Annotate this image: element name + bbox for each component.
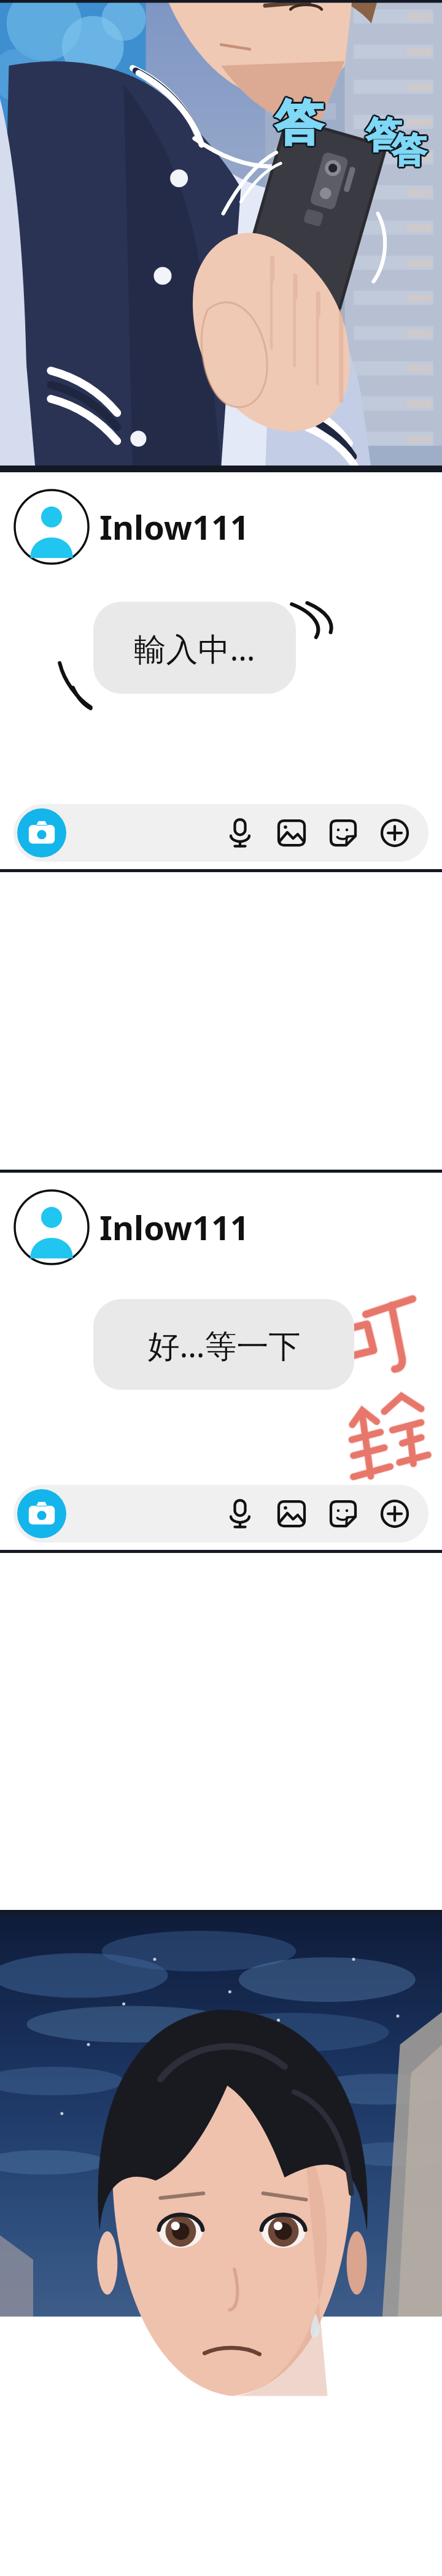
- staticText: Inlow111: [99, 1205, 249, 1250]
- staticText: 答: [367, 112, 403, 156]
- button[interactable]: Photo: [273, 1495, 311, 1533]
- staticText: 答: [390, 129, 424, 172]
- button[interactable]: Sticker: [324, 1495, 362, 1533]
- staticText: 答: [275, 91, 323, 151]
- button[interactable]: More: [376, 814, 414, 852]
- staticText: 答: [274, 94, 322, 155]
- staticText: 答: [393, 130, 427, 174]
- button[interactable]: Camera: [14, 804, 428, 862]
- staticText: 答: [364, 113, 400, 158]
- staticText: 答: [390, 130, 425, 174]
- staticText: 答: [277, 93, 325, 153]
- staticText: 好…等一下: [147, 1323, 301, 1367]
- staticText: 答: [390, 128, 425, 171]
- button[interactable]: 好…等一下: [93, 1299, 354, 1390]
- staticText: 答: [365, 112, 400, 156]
- staticText: 答: [366, 113, 401, 158]
- staticText: 答: [393, 128, 427, 171]
- staticText: 答: [367, 114, 403, 159]
- staticText: 答: [275, 95, 323, 155]
- staticText: 答: [366, 115, 401, 159]
- button[interactable]: Inlow111: [0, 1189, 442, 1265]
- staticText: 答: [392, 129, 426, 172]
- button[interactable]: Camera: [14, 1485, 428, 1543]
- button[interactable]: Voice message: [221, 814, 259, 852]
- staticText: 答: [274, 92, 322, 152]
- button[interactable]: Photo: [273, 814, 311, 852]
- staticText: 答: [392, 131, 426, 174]
- staticText: 答: [366, 111, 401, 156]
- staticText: 答: [394, 129, 428, 172]
- staticText: 答: [368, 113, 403, 158]
- staticText: 輸入中…: [134, 626, 255, 670]
- staticText: 答: [365, 114, 400, 159]
- button[interactable]: More: [376, 1495, 414, 1533]
- staticText: Inlow111: [99, 504, 249, 550]
- button[interactable]: Sticker: [324, 814, 362, 852]
- button[interactable]: 輸入中…: [93, 602, 296, 694]
- button[interactable]: Camera: [17, 1489, 66, 1538]
- button[interactable]: Inlow111: [0, 489, 442, 565]
- staticText: 答: [273, 93, 321, 153]
- staticText: 答: [275, 93, 323, 153]
- staticText: 答: [276, 92, 324, 152]
- staticText: 答: [392, 127, 426, 171]
- button[interactable]: Voice message: [221, 1495, 259, 1533]
- staticText: 答: [276, 94, 324, 155]
- button[interactable]: Camera: [17, 808, 66, 857]
